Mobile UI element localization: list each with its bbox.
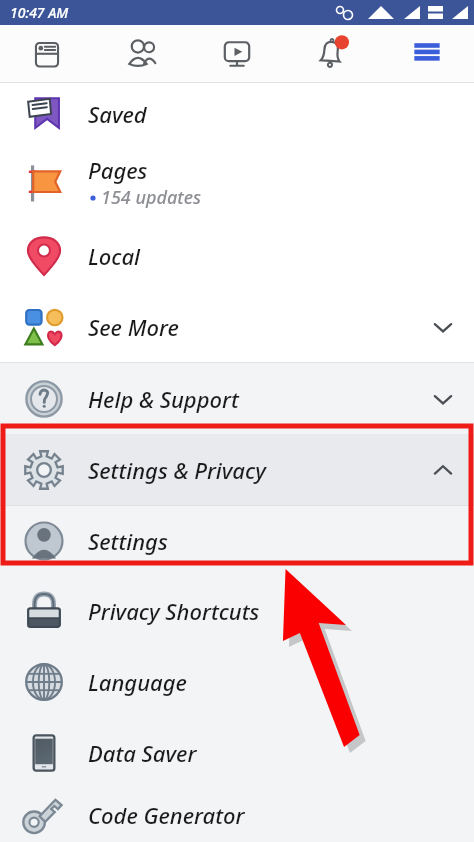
staticText: Local — [88, 241, 141, 271]
button[interactable]: Data Saver — [0, 717, 474, 788]
button[interactable]: Local — [0, 220, 474, 291]
staticText: Code Generator — [88, 800, 245, 830]
staticText: See More — [88, 312, 179, 342]
button[interactable]: See More — [0, 291, 474, 362]
staticText: Settings — [88, 526, 168, 556]
button[interactable]: Language — [0, 646, 474, 717]
button[interactable]: News Feed — [0, 25, 94, 82]
button[interactable]: Help & Support — [0, 363, 474, 434]
button[interactable]: Notifications — [284, 25, 379, 82]
button[interactable]: Pages — [0, 145, 474, 220]
staticText: Saved — [88, 99, 147, 129]
staticText: 10:47 AM — [10, 3, 69, 22]
staticText: Help & Support — [88, 384, 239, 414]
staticText: Settings & Privacy — [88, 455, 266, 485]
staticText: Language — [88, 667, 187, 697]
button[interactable]: Menu — [379, 25, 474, 82]
button[interactable]: Settings & Privacy — [0, 434, 474, 505]
button[interactable]: Settings — [0, 506, 474, 575]
staticText: Pages — [88, 155, 148, 185]
staticText: 154 updates — [101, 185, 202, 210]
button[interactable]: Privacy Shortcuts — [0, 575, 474, 646]
staticText: Privacy Shortcuts — [88, 596, 260, 626]
button[interactable]: Friends — [94, 25, 189, 82]
button[interactable]: Code Generator — [0, 788, 474, 842]
staticText: Data Saver — [88, 738, 197, 768]
button[interactable]: Watch — [189, 25, 284, 82]
button[interactable]: Saved — [0, 83, 474, 145]
